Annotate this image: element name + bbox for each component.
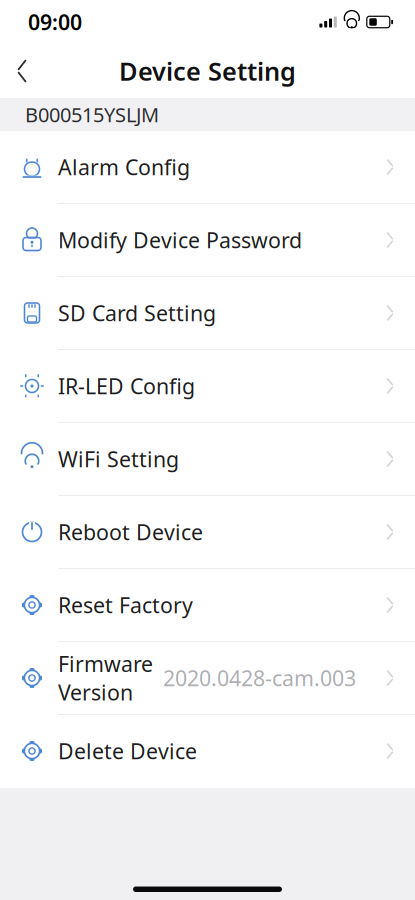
button[interactable]: Firmware Version bbox=[0, 642, 415, 715]
staticText: Alarm Config bbox=[58, 153, 190, 181]
staticText: Firmware Version bbox=[58, 650, 153, 706]
staticText: WiFi Setting bbox=[58, 445, 179, 473]
staticText: Reset Factory bbox=[58, 591, 193, 619]
staticText: Device Setting bbox=[119, 54, 296, 88]
button[interactable]: SD Card Setting bbox=[0, 277, 415, 350]
staticText: Reboot Device bbox=[58, 518, 203, 546]
button[interactable]: Alarm Config bbox=[0, 131, 415, 204]
staticText: 2020.0428-cam.003 bbox=[157, 664, 356, 692]
staticText: IR-LED Config bbox=[58, 372, 195, 400]
button[interactable]: Reboot Device bbox=[0, 496, 415, 569]
staticText: SD Card Setting bbox=[58, 299, 216, 327]
staticText: 09:00 bbox=[28, 8, 82, 36]
button[interactable]: Modify Device Password bbox=[0, 204, 415, 277]
button[interactable]: Reset Factory bbox=[0, 569, 415, 642]
staticText: B000515YSLJM bbox=[25, 101, 159, 128]
button[interactable]: Back bbox=[0, 49, 44, 93]
button[interactable]: Delete Device bbox=[0, 715, 415, 788]
staticText: Delete Device bbox=[58, 737, 197, 765]
button[interactable]: IR-LED Config bbox=[0, 350, 415, 423]
staticText: Modify Device Password bbox=[58, 226, 302, 254]
button[interactable]: WiFi Setting bbox=[0, 423, 415, 496]
